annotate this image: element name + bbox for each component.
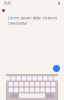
staticText: 9:41 [4,0,11,6]
button[interactable]: Send [53,65,60,72]
button[interactable]: Key [22,76,26,80]
button[interactable]: Key [35,88,39,92]
button[interactable]: Key [32,76,37,80]
button[interactable]: Key [43,76,47,80]
button[interactable]: Key [38,76,42,80]
staticText: ▮ [58,1,60,5]
button[interactable]: Key [24,82,29,86]
button[interactable]: Key [27,76,32,80]
button[interactable]: Key [54,76,58,80]
button[interactable]: Key [40,88,45,92]
button[interactable]: Key [19,88,24,92]
button[interactable]: Key [6,76,10,80]
button[interactable]: Key [48,76,53,80]
button[interactable]: Key [11,76,16,80]
staticText: Lorem ipsum dolor sit amet consectetur [7,15,56,26]
button[interactable]: Key [19,82,24,86]
button[interactable]: Key [17,76,21,80]
button[interactable]: Key [19,93,45,98]
button[interactable]: Key [24,88,29,92]
button[interactable]: Key [40,82,45,86]
button[interactable]: Key [35,82,39,86]
